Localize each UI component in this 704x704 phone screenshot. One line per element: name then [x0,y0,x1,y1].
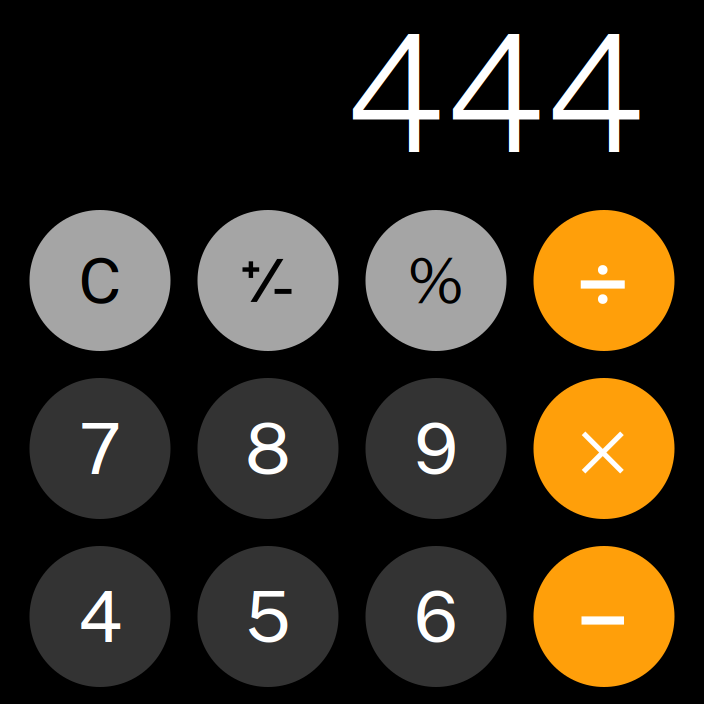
staticText: 5 [245,575,290,658]
staticText: 9 [414,407,458,490]
button[interactable]: Multiply [533,378,674,519]
button[interactable]: Subtract [533,546,674,687]
button[interactable]: 5 [197,546,338,687]
button[interactable]: 4 [29,546,170,687]
staticText: 6 [414,575,458,658]
button[interactable]: 8 [197,378,338,519]
staticText: 8 [245,407,291,490]
staticText: C [78,244,121,317]
button[interactable]: 7 [29,378,170,519]
staticText: 4 [78,575,122,658]
button[interactable]: 6 [365,546,506,687]
staticText: 7 [79,407,121,490]
button[interactable]: Divide [533,210,674,351]
button[interactable]: 9 [365,378,506,519]
staticText: % [407,244,464,317]
button[interactable]: C [29,210,170,351]
button[interactable]: % [365,210,506,351]
staticText: 444 [345,0,645,188]
button[interactable]: Toggle sign [197,210,338,351]
